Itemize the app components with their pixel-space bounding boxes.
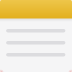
button[interactable]: List item 1 bbox=[0, 24, 72, 36]
button[interactable]: List item 2 bbox=[0, 36, 72, 48]
button[interactable]: List item 3 bbox=[0, 48, 72, 60]
button[interactable]: Top app bar bbox=[0, 0, 72, 18]
